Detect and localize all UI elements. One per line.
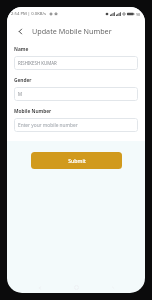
staticText: Name — [14, 46, 29, 53]
button[interactable]: Enter your mobile number — [14, 118, 138, 132]
staticText: Gender — [14, 77, 32, 84]
staticText: Update Mobile Number — [32, 26, 112, 36]
button[interactable]: RISHIKESH KUMAR — [14, 56, 138, 70]
staticText: Mobile Number — [14, 108, 52, 115]
staticText: Submit — [68, 157, 86, 164]
staticText: 2:54 PM | 0.0KB/s — [11, 11, 47, 17]
staticText: RISHIKESH KUMAR — [18, 60, 57, 66]
staticText: M — [18, 91, 22, 97]
staticText: Enter your mobile number — [18, 122, 78, 129]
staticText: 98 — [136, 12, 141, 17]
button[interactable]: Submit — [31, 152, 122, 169]
button[interactable]: Back — [13, 24, 27, 38]
button[interactable]: M — [14, 87, 138, 101]
